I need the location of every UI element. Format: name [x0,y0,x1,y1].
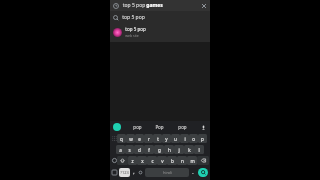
button[interactable]: p [198,134,207,143]
button[interactable]: l [194,145,204,154]
button[interactable]: e [135,134,144,143]
staticText: o [192,136,195,142]
button[interactable]: top 5 pop [110,24,210,40]
staticText: g [158,147,161,153]
staticText: f [148,147,150,153]
staticText: e [138,136,141,142]
staticText: i [184,136,186,142]
button[interactable]: b [167,156,177,165]
staticText: p [201,136,204,142]
staticText: h [168,147,171,153]
staticText: pop [178,124,187,130]
button[interactable]: top 5 pop [110,11,210,24]
button[interactable]: z [128,156,137,165]
staticText: v [161,158,164,164]
button[interactable]: pop [171,121,194,133]
staticText: y [165,136,168,142]
button[interactable]: k [184,145,194,154]
button[interactable]: r [144,134,153,143]
button[interactable]: j [174,145,184,154]
staticText: top 5 pop [122,14,145,21]
staticText: hindi [163,170,172,175]
other: Recent [113,3,119,9]
button[interactable]: i [180,134,189,143]
staticText: , [133,169,135,176]
staticText: n [181,158,184,164]
staticText: s [128,147,131,153]
staticText: c [151,158,154,164]
staticText: web site [125,33,139,38]
staticText: t [157,136,159,142]
button[interactable]: f [144,145,154,154]
staticText: z [131,158,134,164]
staticText: Pop [155,124,164,130]
button[interactable]: t [153,134,162,143]
staticText: j [178,147,180,153]
staticText: l [198,147,200,153]
staticText: r [148,136,150,142]
staticText: m [190,158,195,164]
button[interactable]: a [116,145,125,154]
button[interactable]: y [162,134,171,143]
button[interactable]: Voice input [199,123,207,131]
button[interactable]: s [125,145,134,154]
button[interactable] [197,156,209,165]
button[interactable]: v [157,156,167,165]
staticText: x [141,158,144,164]
staticText: ?123 [120,170,129,175]
staticText: q [120,136,123,142]
button[interactable]: Pop [148,121,171,133]
button[interactable]: Menu [111,133,117,144]
button[interactable]: x [137,156,147,165]
button[interactable] [117,156,128,165]
button[interactable]: m [187,156,197,165]
staticText: top 5 pop [125,26,146,32]
button[interactable]: q [117,134,126,143]
button[interactable]: w [126,134,135,143]
button[interactable]: Settings [137,167,144,178]
button[interactable]: n [177,156,187,165]
button[interactable]: d [134,145,144,154]
button[interactable]: Google Assistant [113,123,121,131]
button[interactable]: Recent [110,0,210,11]
staticText: k [188,147,191,153]
button[interactable]: Comma [131,167,137,178]
staticText: w [129,136,133,142]
button[interactable]: Clear [200,2,207,9]
button[interactable]: pop [126,121,148,133]
button[interactable]: Period [190,167,196,178]
staticText: . [192,169,194,176]
button[interactable]: c [147,156,157,165]
button[interactable]: h [164,145,174,154]
button[interactable]: Clipboard [111,167,118,178]
button[interactable]: ?123 [119,168,130,177]
staticText: d [138,147,141,153]
button[interactable]: o [189,134,198,143]
button[interactable]: Emoji [111,155,117,166]
button[interactable]: Space [145,168,189,177]
staticText: u [174,136,177,142]
button[interactable]: u [171,134,180,143]
staticText: top 5 pop [122,2,146,9]
staticText: b [171,158,174,164]
staticText: a [119,147,122,153]
button[interactable]: g [154,145,164,154]
button[interactable]: Search [198,168,208,177]
staticText: games [146,2,163,9]
staticText: pop [133,124,142,130]
